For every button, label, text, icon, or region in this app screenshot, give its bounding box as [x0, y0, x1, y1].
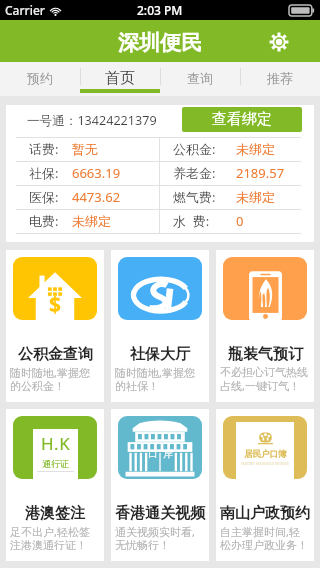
staticText: 查询	[187, 70, 213, 86]
button[interactable]: 居民户口簿	[216, 409, 314, 561]
staticText: 暂无	[72, 141, 98, 157]
staticText: 南山户政预约	[220, 504, 310, 523]
staticText: 瓶装气预订	[228, 345, 303, 364]
staticText: 社保:	[29, 164, 59, 182]
staticText: 居民户口簿	[244, 449, 287, 460]
staticText: 未绑定	[236, 141, 275, 157]
staticText: 查看绑定	[212, 110, 272, 129]
staticText: 岸	[163, 447, 173, 460]
button[interactable]: 推荐	[240, 62, 320, 96]
staticText: 公积金查询	[18, 345, 93, 364]
staticText: 话费:	[29, 140, 59, 158]
button[interactable]: 查看绑定	[182, 107, 302, 132]
staticText: $	[49, 290, 62, 319]
button[interactable]: $	[6, 250, 104, 402]
staticText: 不必担心订气热线 占线,一键订气！	[220, 365, 308, 393]
staticText: 通关视频实时看, 无忧畅行！	[115, 524, 195, 553]
staticText: 随时随地,掌握您 的社保！	[115, 365, 195, 394]
staticText: 推荐	[267, 70, 293, 86]
button[interactable]: 瓶装气预订	[216, 250, 314, 402]
staticText: 公积金:	[173, 140, 216, 158]
button[interactable]: Settings	[269, 32, 289, 52]
staticText: 0	[236, 212, 244, 230]
staticText: 通行证	[42, 458, 69, 469]
staticText: 社保大厅	[130, 345, 190, 364]
staticText: 随时随地,掌握您 的公积金！	[10, 365, 90, 394]
staticText: 预约	[27, 70, 53, 86]
staticText: 首页	[105, 69, 135, 88]
button[interactable]: 首页	[80, 62, 160, 96]
staticText: 2189.57	[236, 164, 285, 182]
staticText: Carrier	[5, 2, 45, 18]
button[interactable]: 口	[111, 409, 209, 561]
staticText: 港澳签注	[25, 504, 85, 523]
staticText: 未绑定	[236, 189, 275, 205]
staticText: 2:03 PM	[137, 2, 183, 18]
staticText: 自主掌握时间,轻 松办理户政业务！	[220, 524, 308, 553]
staticText: RESIDENT HOUSEHOLD REGISTER	[241, 462, 289, 466]
staticText: 水 费:	[173, 212, 210, 230]
button[interactable]: 查询	[160, 62, 240, 96]
button[interactable]: H.K	[6, 409, 104, 561]
staticText: 电费:	[29, 212, 59, 230]
staticText: 足不出户,轻松签 注港澳通行证！	[10, 524, 90, 553]
staticText: H.K	[41, 432, 71, 455]
staticText: 养老金:	[173, 164, 216, 182]
staticText: 6663.19	[72, 164, 121, 182]
staticText: 医保:	[29, 188, 59, 206]
staticText: 口	[148, 447, 158, 460]
staticText: 4473.62	[72, 188, 121, 206]
button[interactable]: 社保大厅	[111, 250, 209, 402]
staticText: 一号通：13424221379	[27, 112, 157, 129]
staticText: 深圳便民	[118, 30, 202, 56]
staticText: 未绑定	[72, 213, 111, 229]
staticText: 燃气费:	[173, 188, 216, 206]
button[interactable]: 预约	[0, 62, 80, 96]
staticText: 香港通关视频	[115, 504, 205, 523]
